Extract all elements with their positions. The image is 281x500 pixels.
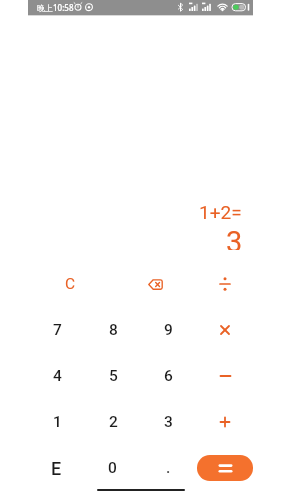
button[interactable]: 7 [37,313,77,347]
staticText: 3 [226,225,243,250]
staticText: 7 [53,321,62,339]
staticText: 6 [164,367,173,385]
button[interactable] [205,405,245,439]
staticText: 2 [109,413,118,431]
staticText: 1 [53,413,62,431]
button[interactable]: 2 [93,405,133,439]
button[interactable]: 0 [92,451,132,485]
staticText: 5 [109,367,118,385]
button[interactable]: 9 [148,313,188,347]
button[interactable]: 1 [37,405,77,439]
button[interactable]: 4 [37,359,77,393]
button[interactable] [197,455,253,481]
button[interactable] [205,267,245,301]
staticText: E [51,458,62,479]
button[interactable]: C [50,267,90,301]
button[interactable]: 8 [93,313,133,347]
button[interactable]: E [36,451,76,485]
button[interactable] [135,267,175,301]
staticText: 3 [164,413,173,431]
staticText: 晚上10:58 [37,2,74,13]
button[interactable]: 3 [148,405,188,439]
staticText: 1+2= [199,201,242,219]
staticText: C [65,275,76,293]
button[interactable] [205,313,245,347]
staticText: 0 [108,459,117,477]
button[interactable] [205,359,245,393]
button[interactable]: 6 [148,359,188,393]
staticText: . [166,459,171,477]
staticText: 9 [164,321,173,339]
staticText: 8 [109,321,118,339]
staticText: 4 [53,367,62,385]
button[interactable]: 5 [93,359,133,393]
button[interactable]: . [148,451,188,485]
